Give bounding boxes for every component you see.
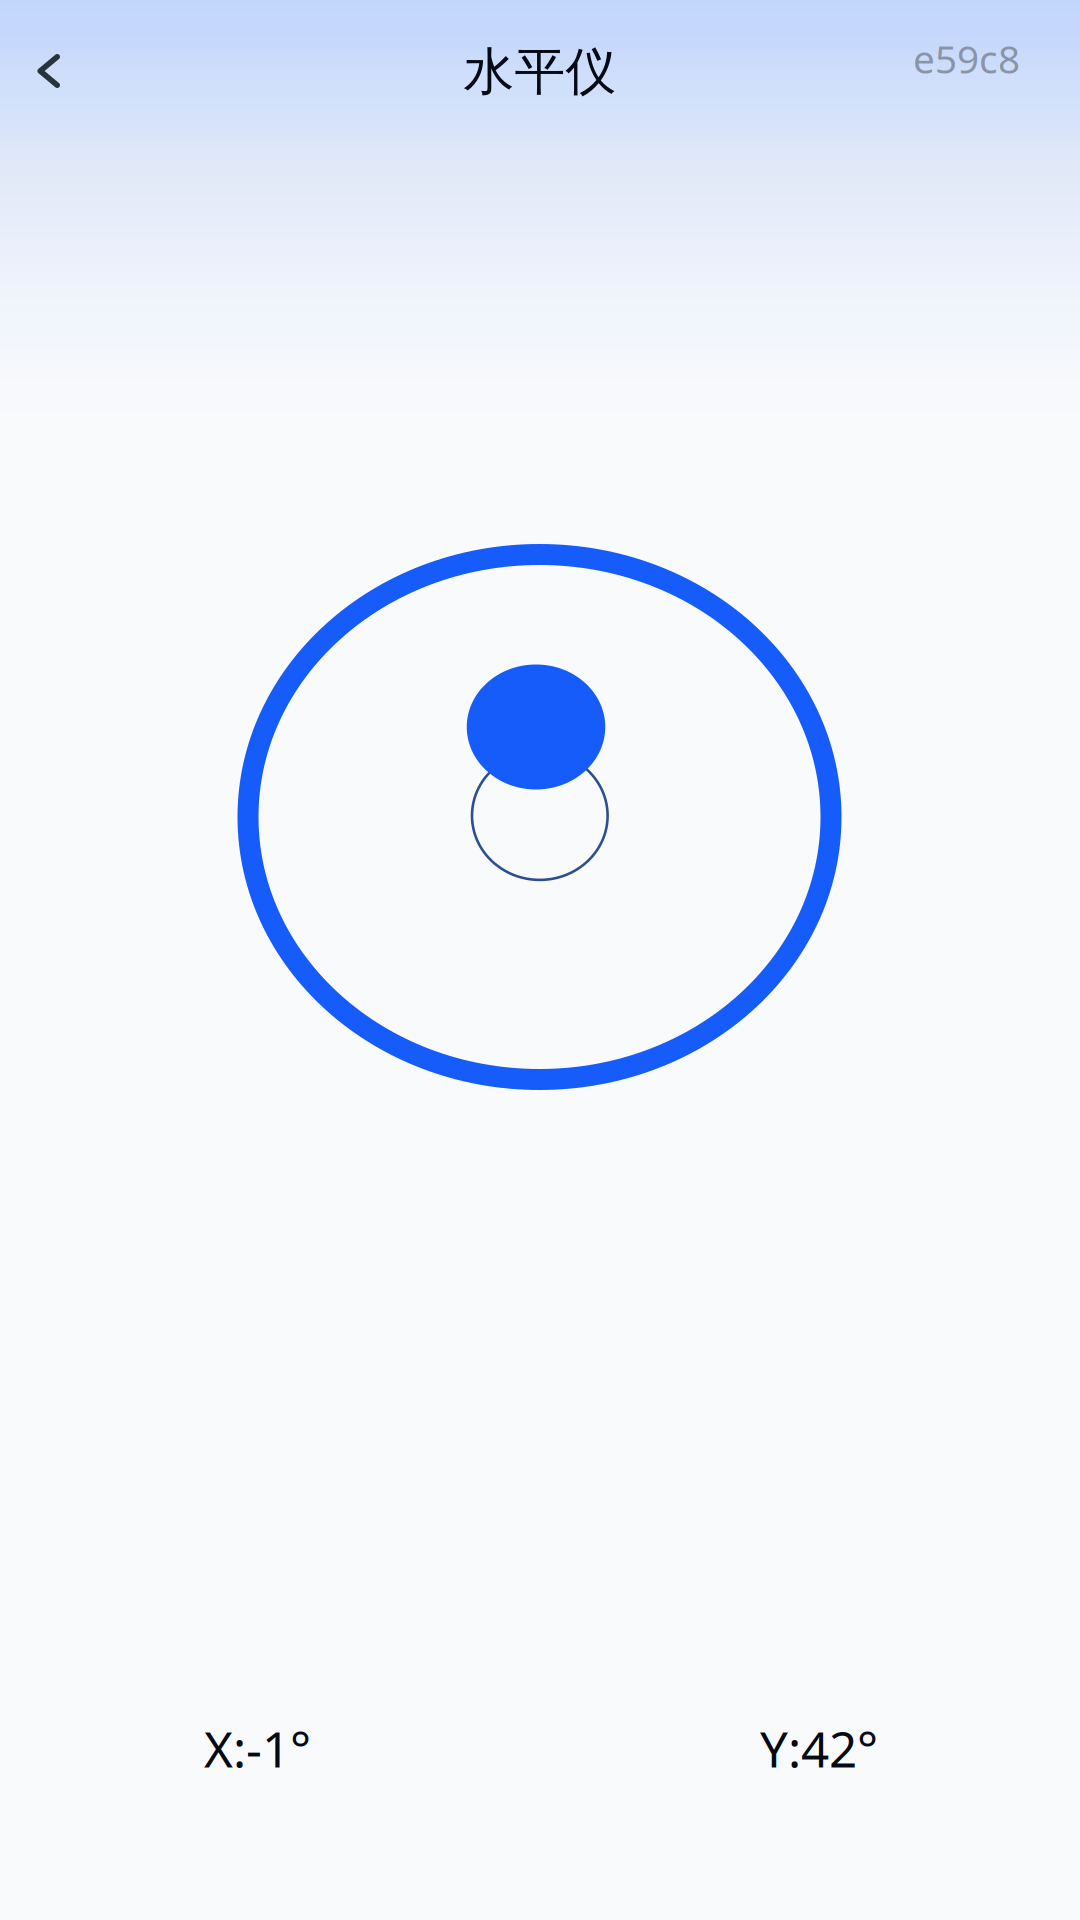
button[interactable]: Back bbox=[0, 15, 120, 125]
staticText: 水平仪 bbox=[463, 41, 616, 103]
staticText: X:-1° bbox=[204, 1715, 311, 1781]
staticText: Y:42° bbox=[760, 1715, 878, 1781]
staticText: e59c8 bbox=[913, 33, 1020, 84]
